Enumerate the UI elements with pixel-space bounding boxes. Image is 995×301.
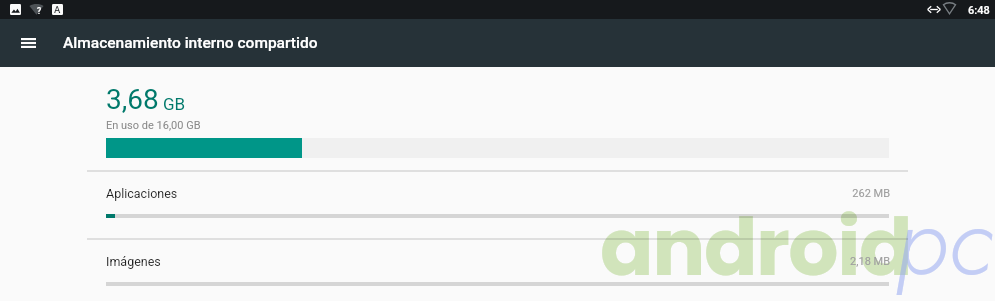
staticText: Imágenes [106,254,161,269]
staticText: Aplicaciones [106,186,178,201]
button[interactable]: Imágenes [0,239,995,301]
button[interactable]: Open navigation drawer [5,24,51,62]
staticText: pc [896,171,993,301]
staticText: 262 MB [0,187,890,200]
staticText: 3,68 [106,83,159,116]
staticText: En uso de 16,00 GB [106,119,201,132]
staticText: GB [163,94,186,114]
button[interactable]: Aplicaciones [0,171,995,239]
staticText: android [600,192,912,301]
staticText: ? [37,6,42,16]
staticText: A [54,4,61,15]
staticText: Almacenamiento interno compartido [63,34,318,52]
staticText: 2,18 MB [0,255,890,268]
staticText: 6:48 [968,4,990,17]
